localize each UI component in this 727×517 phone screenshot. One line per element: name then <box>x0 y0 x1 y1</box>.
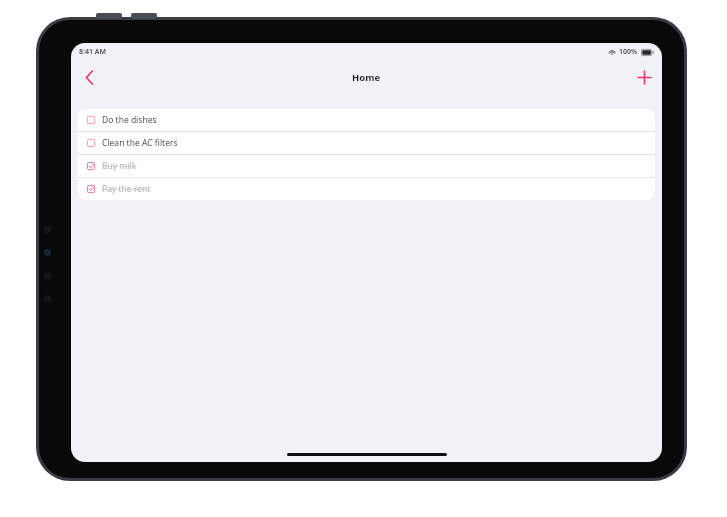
button[interactable]: Add task <box>629 62 659 92</box>
button[interactable]: Pay the rent <box>78 178 655 200</box>
staticText: Clean the AC filters <box>102 137 178 149</box>
staticText: Pay the rent <box>102 183 151 195</box>
staticText: Buy milk <box>102 160 137 172</box>
staticText: Home <box>352 71 381 84</box>
staticText: 100% <box>619 47 638 57</box>
staticText: 8:41 AM <box>79 47 106 57</box>
staticText: Do the dishes <box>102 114 157 126</box>
button[interactable]: Do the dishes <box>78 109 655 131</box>
button[interactable]: Clean the AC filters <box>78 132 655 154</box>
button[interactable]: Buy milk <box>78 155 655 177</box>
button[interactable]: Back <box>74 62 104 92</box>
